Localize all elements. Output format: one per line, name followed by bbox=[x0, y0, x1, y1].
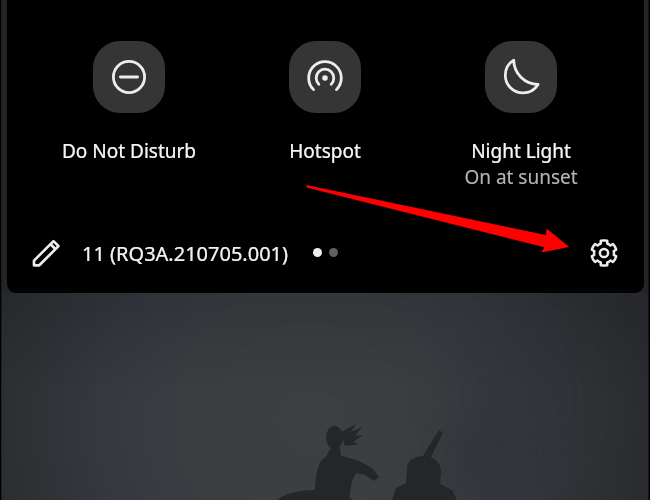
button[interactable]: Do Not Disturb bbox=[29, 41, 229, 191]
button[interactable]: Hotspot bbox=[225, 41, 425, 191]
staticText: 11 (RQ3A.210705.001) bbox=[82, 240, 289, 267]
staticText: Night Light bbox=[421, 138, 621, 164]
button[interactable]: Night Light bbox=[421, 41, 621, 191]
staticText: Hotspot bbox=[225, 138, 425, 164]
button[interactable]: Page 1 of 2 bbox=[306, 241, 345, 265]
staticText: Do Not Disturb bbox=[29, 138, 229, 164]
button[interactable]: Settings bbox=[583, 232, 625, 274]
staticText: On at sunset bbox=[421, 164, 621, 190]
button[interactable]: Edit tiles bbox=[25, 232, 67, 274]
